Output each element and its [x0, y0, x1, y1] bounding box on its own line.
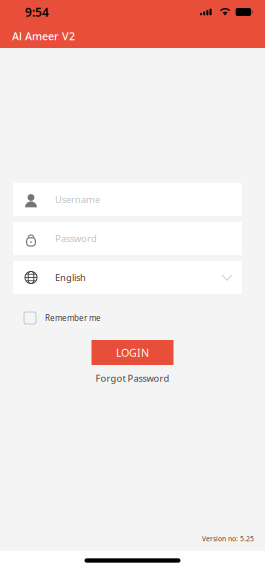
staticText: Forgot Password: [95, 372, 169, 384]
staticText: Password: [55, 232, 97, 245]
button[interactable]: English: [13, 261, 242, 294]
button[interactable]: Remember me: [0, 294, 265, 324]
staticText: English: [55, 271, 86, 284]
button[interactable]: LOGIN: [91, 340, 173, 365]
staticText: Remember me: [45, 313, 101, 323]
button[interactable]: Username: [13, 183, 242, 216]
staticText: Username: [55, 193, 100, 206]
staticText: Al Ameer V2: [12, 29, 75, 43]
staticText: Version no: 5.25: [202, 534, 254, 543]
button[interactable]: Password: [13, 222, 242, 255]
staticText: 9:54: [25, 4, 49, 20]
button[interactable]: Forgot Password: [89, 365, 175, 387]
staticText: LOGIN: [116, 345, 149, 360]
